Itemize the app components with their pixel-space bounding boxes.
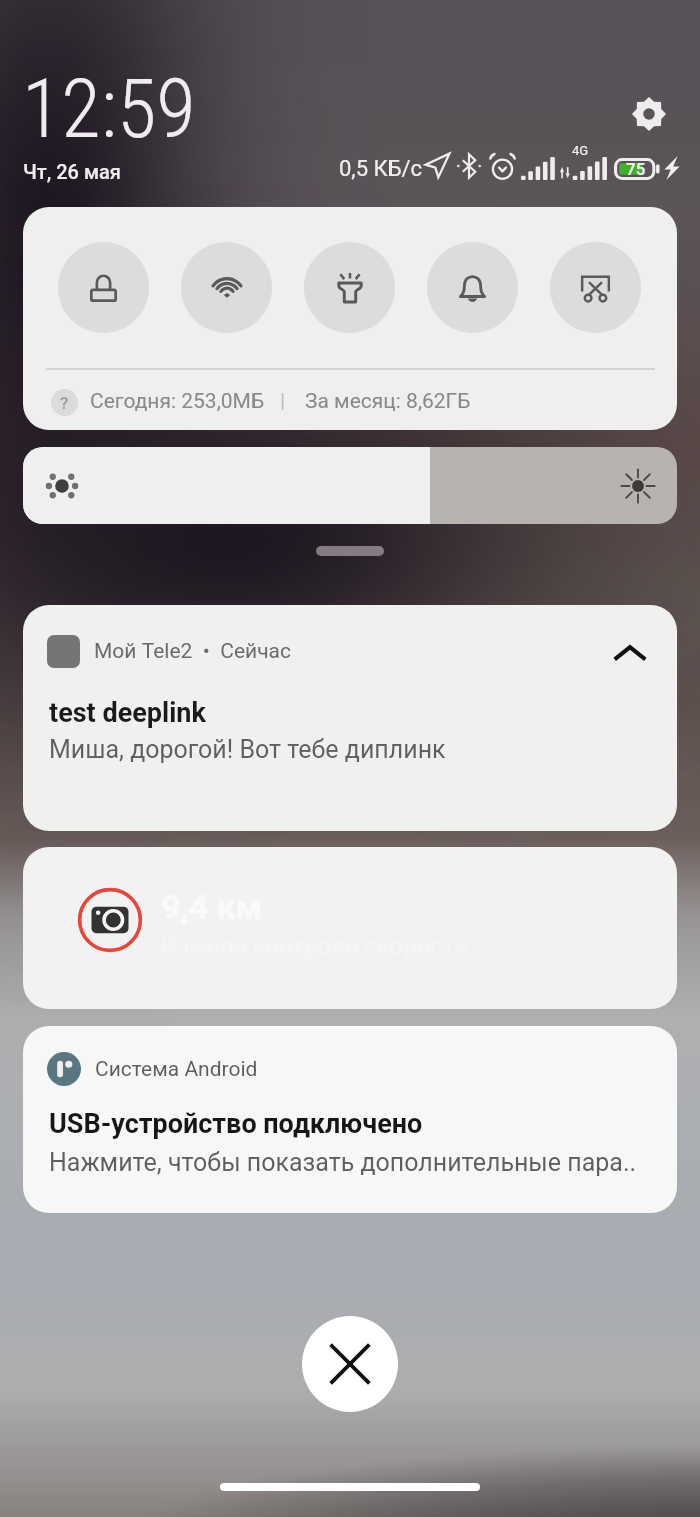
staticText: 75 bbox=[626, 159, 646, 179]
button[interactable]: 9,4 км bbox=[23, 847, 677, 1009]
staticText: Мой Tele2 • Сейчас bbox=[94, 639, 292, 664]
staticText: Нажмите, чтобы показать дополнительные п… bbox=[49, 1148, 677, 1177]
button[interactable]: Screenshot bbox=[550, 242, 641, 333]
staticText: ? bbox=[60, 393, 69, 413]
staticText: 9,4 км bbox=[161, 887, 262, 927]
button[interactable] bbox=[316, 546, 384, 556]
staticText: Чт, 26 мая bbox=[23, 160, 121, 183]
staticText: 0,5 КБ/с bbox=[339, 156, 423, 182]
button[interactable] bbox=[23, 447, 677, 524]
staticText: test deeplink bbox=[49, 697, 206, 729]
staticText: Миша, дорогой! Вот тебе диплинк bbox=[49, 735, 446, 764]
staticText: | bbox=[280, 389, 286, 414]
button[interactable]: Wi-Fi bbox=[181, 242, 272, 333]
staticText: Сегодня: 253,0МБ bbox=[90, 389, 265, 414]
button[interactable]: Settings bbox=[620, 85, 678, 143]
button[interactable]: Clear all notifications bbox=[302, 1316, 398, 1412]
staticText: Система Android bbox=[95, 1057, 258, 1082]
button[interactable]: Система Android bbox=[23, 1026, 677, 1213]
staticText: 4G bbox=[572, 143, 589, 158]
button[interactable]: Lock bbox=[58, 242, 149, 333]
button[interactable]: Collapse bbox=[601, 625, 659, 683]
staticText: USB-устройство подключено bbox=[49, 1108, 423, 1140]
staticText: 12:59 bbox=[22, 62, 196, 157]
button[interactable]: Silent bbox=[427, 242, 518, 333]
staticText: За месяц: 8,62ГБ bbox=[305, 389, 471, 414]
button[interactable]: Flashlight bbox=[304, 242, 395, 333]
button[interactable]: Мой Tele2 • Сейчас bbox=[23, 605, 677, 831]
button[interactable]: Data usage help bbox=[51, 389, 78, 416]
